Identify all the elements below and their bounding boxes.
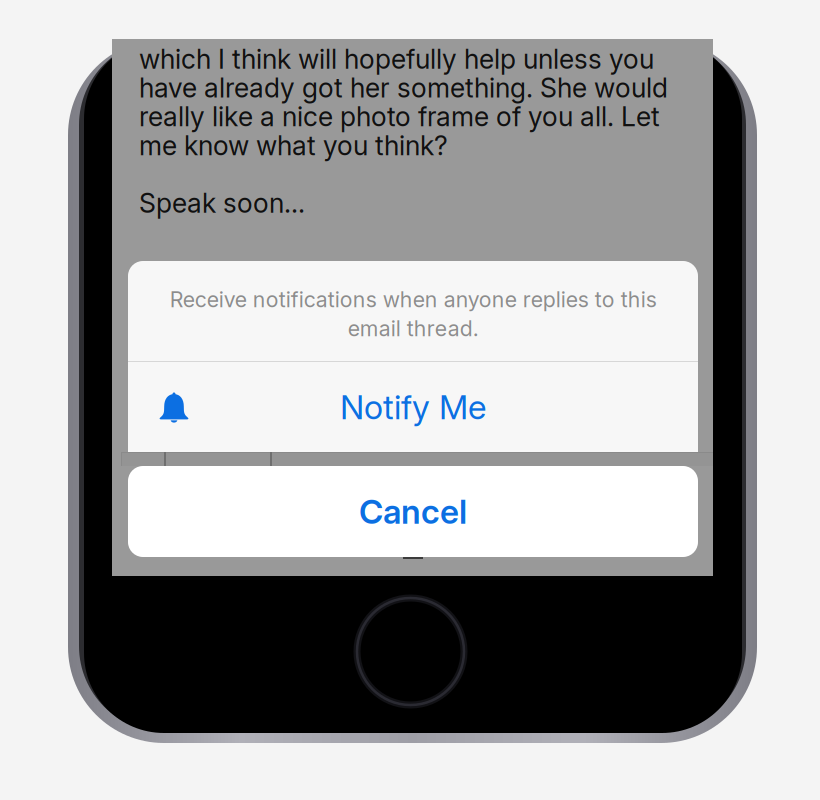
staticText: Cancel [359,491,467,532]
button[interactable]: Cancel [128,466,698,557]
staticText: which I think will hopefully help unless… [139,43,668,219]
button[interactable]: Notify Me [128,362,698,452]
staticText: Notify Me [340,387,486,427]
staticText: Receive notifications when anyone replie… [169,287,656,341]
